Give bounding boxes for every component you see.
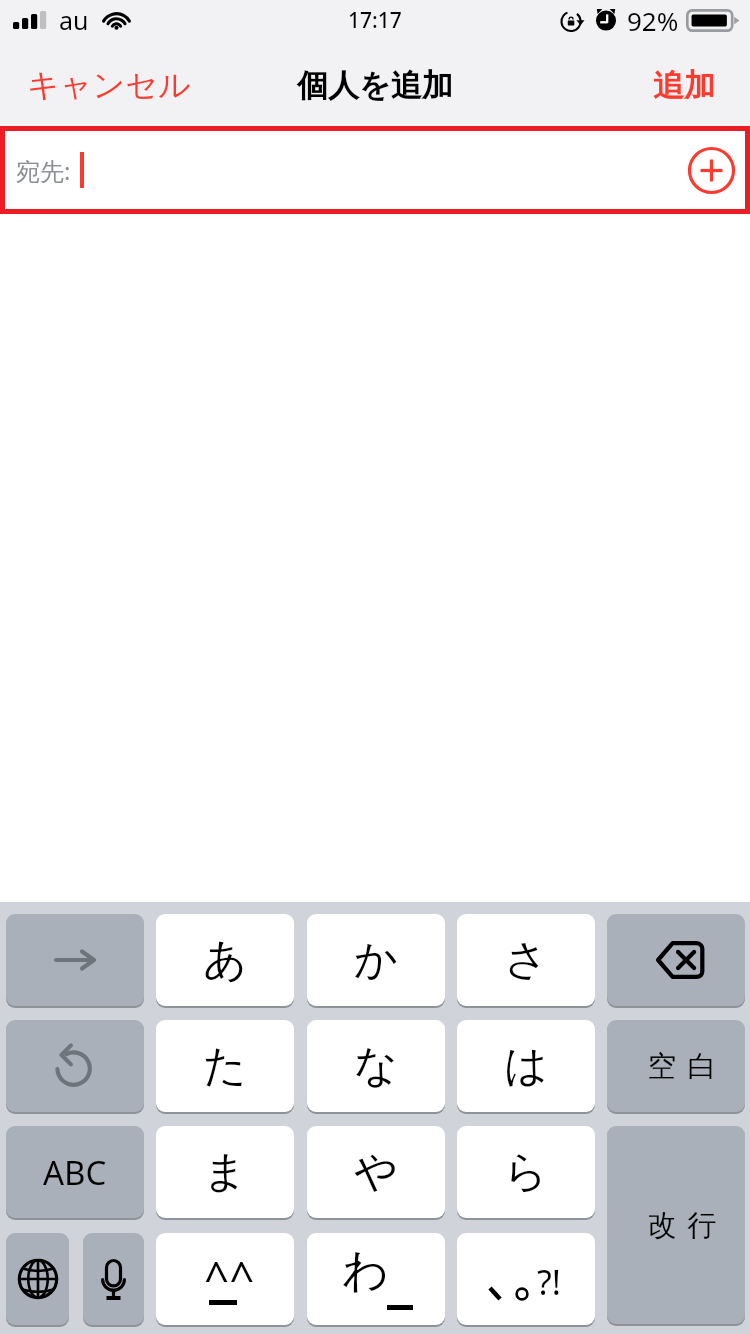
staticText: 空白 [642,1048,722,1085]
staticText: 改行 [642,1207,722,1244]
button[interactable]: ?! [457,1233,595,1325]
staticText: ^^ [204,1247,255,1307]
button[interactable]: か [307,914,445,1006]
staticText: か [354,933,399,987]
staticText: ABC [43,1150,107,1195]
staticText: な [354,1039,399,1093]
staticText: キャンセル [27,65,191,105]
button[interactable]: Undo [6,1020,144,1112]
staticText: わ [342,1242,390,1300]
staticText: au [59,3,89,37]
staticText: 宛先: [16,154,71,187]
button[interactable]: キャンセル [0,51,211,119]
button[interactable]: 空白 [607,1020,745,1112]
button[interactable]: Add contact [686,145,736,195]
button[interactable]: や [307,1126,445,1218]
staticText: 17:17 [348,6,402,35]
button[interactable]: Next candidate [6,914,144,1006]
button[interactable]: Dictation [83,1233,144,1325]
staticText: 追加 [653,66,715,105]
button[interactable]: ら [457,1126,595,1218]
button[interactable]: 改行 [607,1126,745,1324]
staticText: ?! [537,1259,561,1305]
button[interactable]: わ [307,1233,445,1325]
button[interactable]: な [307,1020,445,1112]
button[interactable]: ABC [6,1126,144,1218]
staticText: あ [203,933,248,987]
staticText: さ [504,933,549,987]
staticText: 個人を追加 [297,66,453,105]
button[interactable]: Backspace [607,914,745,1006]
button[interactable]: 追加 [633,52,750,119]
staticText: は [504,1039,549,1093]
button[interactable]: あ [156,914,294,1006]
button[interactable]: Switch language [6,1233,69,1325]
button[interactable]: は [457,1020,595,1112]
button[interactable]: ま [156,1126,294,1218]
staticText: ま [203,1145,248,1199]
button[interactable]: さ [457,914,595,1006]
staticText: た [203,1039,248,1093]
button[interactable]: 宛先: [5,131,745,209]
button[interactable]: た [156,1020,294,1112]
staticText: ら [504,1145,549,1199]
staticText: や [354,1145,399,1199]
button[interactable]: ^^ [156,1233,294,1325]
staticText: 92% [627,3,679,38]
